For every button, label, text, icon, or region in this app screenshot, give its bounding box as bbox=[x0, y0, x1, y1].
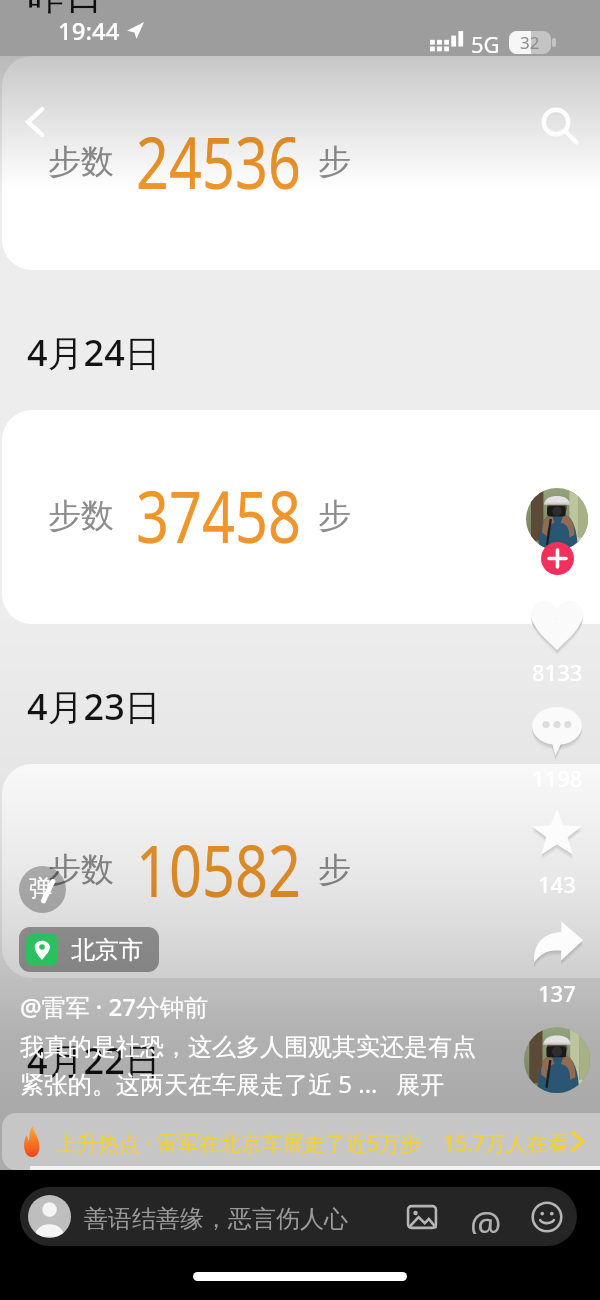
staticText: 步数 bbox=[48, 495, 114, 537]
staticText: 4月22日 bbox=[27, 1036, 161, 1085]
staticText: 1198 bbox=[532, 763, 583, 793]
staticText: @雷军 · 27分钟前 bbox=[20, 990, 209, 1023]
staticText: 8133 bbox=[532, 657, 583, 687]
staticText: 5G bbox=[471, 29, 500, 59]
button[interactable]: 步数 bbox=[2, 764, 600, 978]
staticText: 步数 bbox=[48, 141, 114, 183]
button[interactable]: 作者头像 bbox=[526, 488, 588, 550]
staticText: 我真的是社恐，这么多人围观其实还是有点 紧张的。这两天在车展走了近 5 ... … bbox=[20, 1032, 476, 1100]
staticText: 143 bbox=[538, 869, 576, 899]
staticText: 10582 bbox=[136, 821, 298, 918]
staticText: 步数 bbox=[48, 849, 114, 891]
button[interactable]: 返回 bbox=[12, 94, 60, 142]
button[interactable]: 步数 bbox=[2, 56, 600, 270]
button[interactable]: 图片 bbox=[405, 1200, 439, 1234]
staticText: 北京市 bbox=[71, 935, 143, 965]
staticText: 15.7万人在看 bbox=[443, 1129, 569, 1158]
button[interactable]: 提及 bbox=[469, 1200, 503, 1234]
staticText: 弹 bbox=[29, 874, 52, 903]
button[interactable]: 上升热点 · 雷军在北京车展走了近5万步 bbox=[2, 1113, 600, 1170]
staticText: 善语结善缘，恶言伤人心 bbox=[84, 1204, 348, 1234]
button[interactable]: 搜索 bbox=[532, 98, 580, 146]
button[interactable]: 点赞 bbox=[517, 588, 597, 693]
staticText: 4月23日 bbox=[27, 682, 161, 731]
button[interactable]: 善语结善缘，恶言伤人心 bbox=[20, 1187, 577, 1246]
staticText: 上升热点 · 雷军在北京车展走了近5万步 bbox=[56, 1129, 421, 1158]
button[interactable]: 音乐 bbox=[524, 1027, 590, 1093]
staticText: 137 bbox=[538, 978, 576, 1008]
staticText: @ bbox=[470, 1200, 502, 1234]
button[interactable]: 北京市 bbox=[19, 927, 159, 972]
button[interactable]: 表情 bbox=[530, 1200, 564, 1234]
staticText: 昨日 bbox=[27, 0, 103, 20]
button[interactable]: 弹幕开关 bbox=[19, 866, 66, 913]
staticText: 步 bbox=[318, 495, 351, 537]
staticText: 4月24日 bbox=[27, 328, 161, 377]
button[interactable]: 分享 bbox=[517, 908, 597, 1014]
button[interactable]: 评论 bbox=[517, 694, 597, 799]
staticText: 19:44 bbox=[58, 14, 120, 47]
staticText: 24536 bbox=[136, 113, 298, 210]
button[interactable]: 步数 bbox=[2, 410, 600, 624]
button[interactable]: 关注 bbox=[541, 542, 574, 575]
staticText: 步 bbox=[318, 849, 351, 891]
staticText: 37458 bbox=[136, 467, 298, 564]
staticText: 步 bbox=[318, 141, 351, 183]
button[interactable]: 收藏 bbox=[517, 796, 597, 905]
staticText: 32 bbox=[520, 31, 540, 54]
